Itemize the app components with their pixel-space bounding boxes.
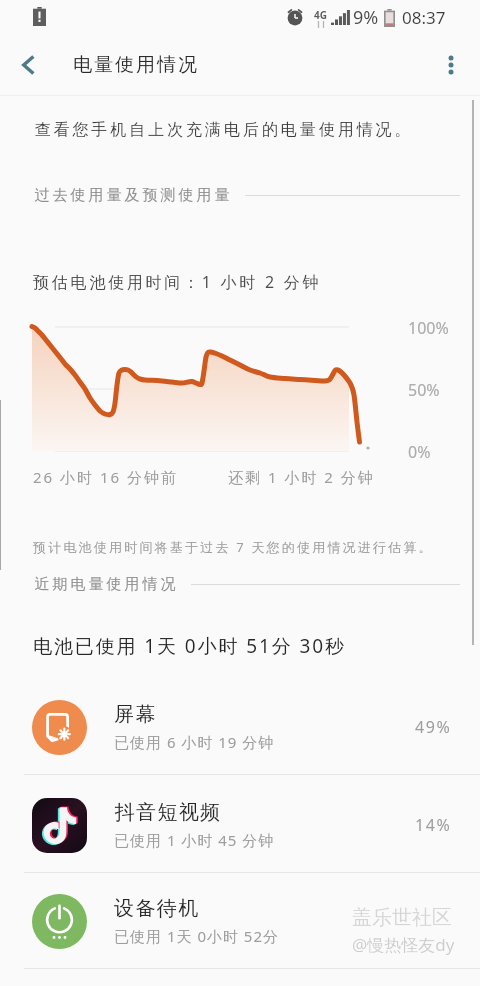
staticText: 设备待机 xyxy=(114,896,200,921)
staticText: 50% xyxy=(408,379,440,401)
staticText: 08:37 xyxy=(402,6,446,29)
button[interactable]: More options xyxy=(422,36,480,94)
staticText: 已使用 6 小时 19 分钟 xyxy=(114,732,275,752)
staticText: 9% xyxy=(353,5,379,30)
staticText: 已使用 1 小时 45 分钟 xyxy=(114,830,275,850)
staticText: 0% xyxy=(408,441,431,463)
staticText: 电池已使用 1天 0小时 51分 30秒 xyxy=(33,633,346,659)
button[interactable]: 抖音短视频 xyxy=(0,797,480,853)
staticText: 49% xyxy=(415,716,452,738)
staticText: 查看您手机自上次充满电后的电量使用情况。 xyxy=(33,120,412,140)
staticText: 还剩 1 小时 2 分钟 xyxy=(228,467,375,487)
staticText: 过去使用量及预测使用量 xyxy=(33,186,231,205)
staticText: @慢热怪友dy xyxy=(352,933,455,956)
staticText: 抖音短视频 xyxy=(114,800,221,825)
staticText: 电量使用情况 xyxy=(72,53,198,77)
staticText: 14% xyxy=(415,814,452,836)
staticText: 预估电池使用时间：1 小时 2 分钟 xyxy=(33,271,322,293)
button[interactable]: 设备待机 xyxy=(0,893,480,949)
staticText: 盖乐世社区 xyxy=(352,905,452,930)
staticText: 近期电量使用情况 xyxy=(33,575,177,594)
button[interactable]: 屏幕 xyxy=(0,699,480,755)
staticText: 4G xyxy=(314,8,327,22)
button[interactable]: Back xyxy=(0,36,58,94)
staticText: 100% xyxy=(408,317,449,339)
staticText: 26 小时 16 分钟前 xyxy=(33,467,179,487)
staticText: 屏幕 xyxy=(114,702,157,727)
staticText: 已使用 1天 0小时 52分 xyxy=(114,926,280,946)
staticText: 预计电池使用时间将基于过去 7 天您的使用情况进行估算。 xyxy=(33,538,434,556)
